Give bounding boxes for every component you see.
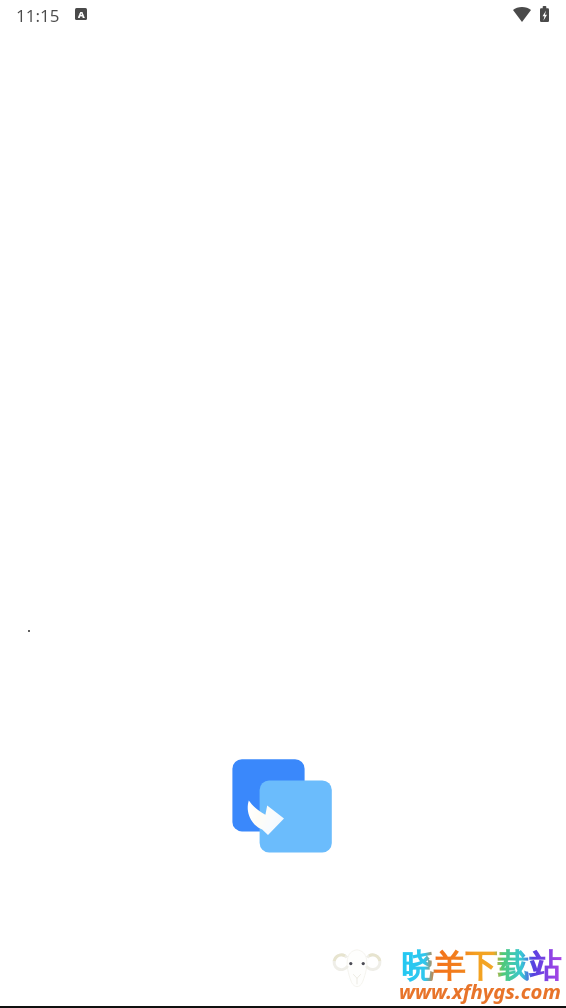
button[interactable]: App logo xyxy=(232,758,332,854)
other: Wi-Fi signal xyxy=(513,7,531,22)
staticText: 晓羊下载站 xyxy=(401,946,561,986)
other: Battery charging xyxy=(540,6,549,22)
staticText: www.xfhygs.com xyxy=(399,977,561,1005)
staticText: A xyxy=(78,8,85,20)
staticText: 11:15 xyxy=(16,4,60,27)
